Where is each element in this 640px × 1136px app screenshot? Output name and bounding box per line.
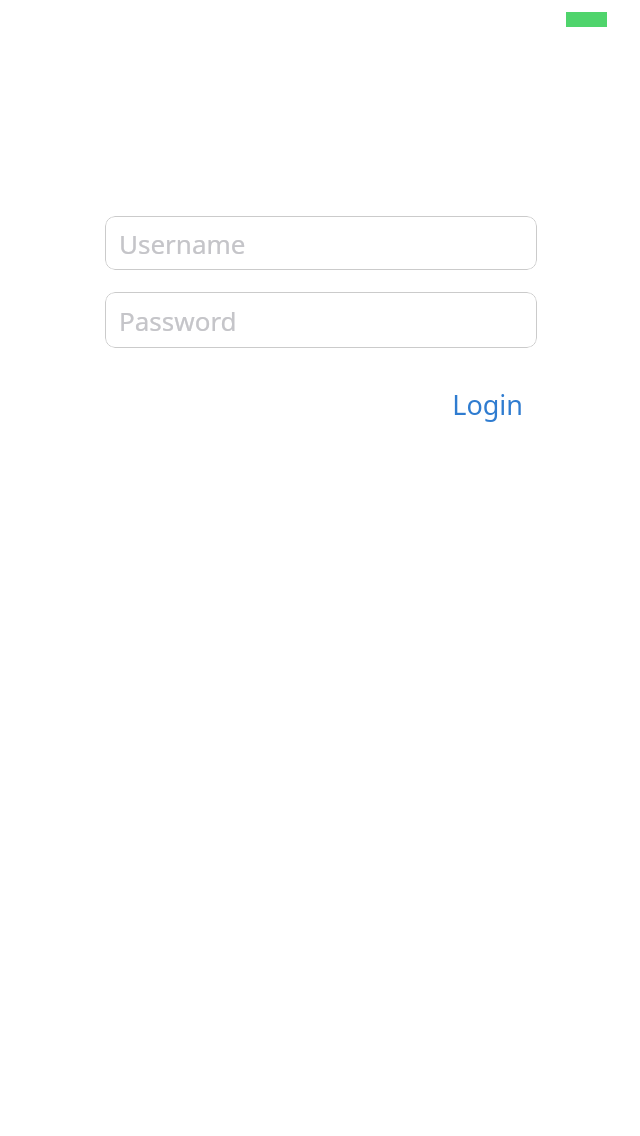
staticText: Login [452,386,523,423]
staticText: Password [119,303,237,338]
button[interactable]: Password field [105,292,537,348]
button[interactable]: Username field [105,216,537,270]
button[interactable]: Login [438,382,537,427]
staticText: Username [119,226,246,261]
